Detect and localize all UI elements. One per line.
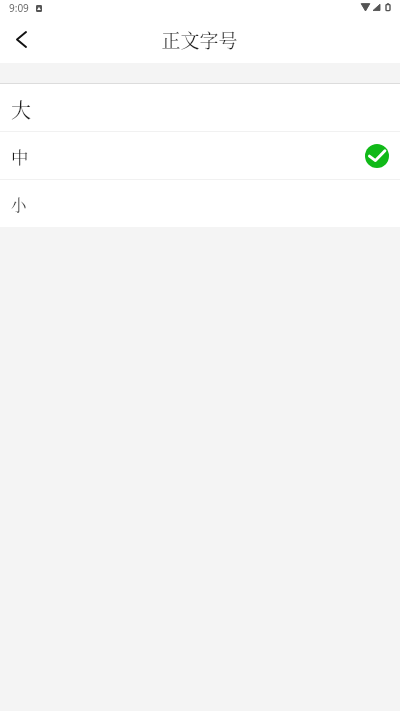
- button[interactable]: 小: [0, 180, 400, 227]
- staticText: 中: [11, 144, 29, 169]
- staticText: 大: [11, 95, 31, 124]
- staticText: 9:09: [9, 1, 29, 15]
- staticText: 小: [11, 193, 27, 215]
- staticText: 正文字号: [161, 26, 238, 53]
- button[interactable]: Back: [0, 24, 39, 63]
- button[interactable]: 大: [0, 84, 400, 131]
- button[interactable]: 中: [0, 132, 400, 179]
